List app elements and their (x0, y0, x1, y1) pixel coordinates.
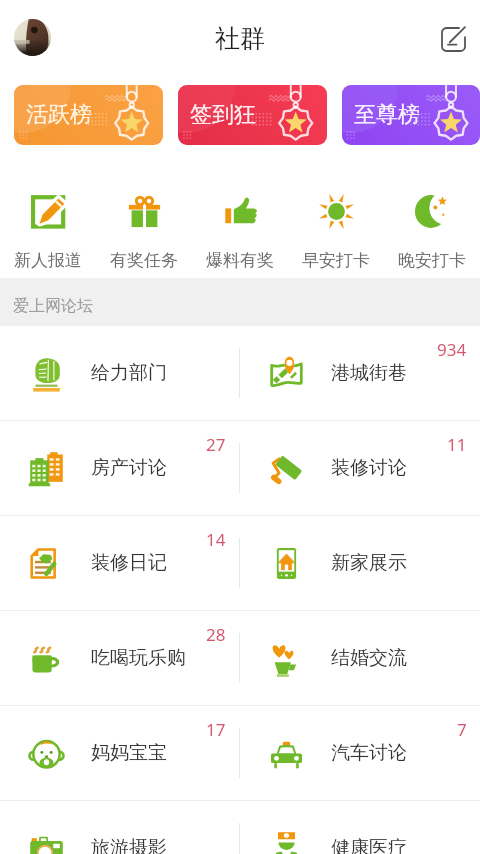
staticText: 汽车讨论 (331, 741, 407, 765)
staticText: 签到狂 (190, 101, 256, 129)
staticText: 新家展示 (331, 551, 407, 575)
button[interactable]: 吃喝玩乐购 (0, 611, 239, 705)
staticText: 11 (447, 433, 467, 456)
staticText: 社群 (215, 23, 265, 54)
button[interactable]: 装修日记 (0, 516, 239, 610)
button[interactable]: 签到狂 (178, 85, 327, 145)
button[interactable]: 房产讨论 (0, 421, 239, 515)
staticText: 早安打卡 (302, 250, 370, 271)
staticText: 吃喝玩乐购 (91, 646, 186, 670)
staticText: 爱上网论坛 (13, 296, 93, 316)
button[interactable]: 晚安打卡 (384, 145, 480, 278)
button[interactable]: Profile (14, 19, 51, 56)
button[interactable]: 结婚交流 (240, 611, 480, 705)
staticText: 装修日记 (91, 551, 167, 575)
button[interactable]: 活跃榜 (14, 85, 163, 145)
staticText: 有奖任务 (110, 250, 178, 271)
staticText: 爆料有奖 (206, 250, 274, 271)
staticText: 28 (206, 623, 226, 646)
button[interactable]: 健康医疗 (240, 801, 480, 854)
button[interactable]: 有奖任务 (96, 145, 192, 278)
staticText: 装修讨论 (331, 456, 407, 480)
staticText: 港城街巷 (331, 361, 407, 385)
staticText: 17 (206, 718, 226, 741)
button[interactable]: New post (431, 17, 475, 61)
staticText: 934 (437, 338, 467, 361)
staticText: 14 (206, 528, 226, 551)
button[interactable]: 汽车讨论 (240, 706, 480, 800)
staticText: 活跃榜 (26, 101, 92, 129)
button[interactable]: 新人报道 (0, 145, 96, 278)
staticText: 7 (457, 718, 467, 741)
button[interactable]: 港城街巷 (240, 326, 480, 420)
staticText: 结婚交流 (331, 646, 407, 670)
button[interactable]: 早安打卡 (288, 145, 384, 278)
staticText: 旅游摄影 (91, 836, 167, 854)
button[interactable]: 新家展示 (240, 516, 480, 610)
button[interactable]: 给力部门 (0, 326, 239, 420)
staticText: 新人报道 (14, 250, 82, 271)
button[interactable]: 装修讨论 (240, 421, 480, 515)
staticText: 晚安打卡 (398, 250, 466, 271)
staticText: 健康医疗 (331, 836, 407, 854)
staticText: 妈妈宝宝 (91, 741, 167, 765)
staticText: 至尊榜 (354, 101, 420, 129)
button[interactable]: 爆料有奖 (192, 145, 288, 278)
staticText: 给力部门 (91, 361, 167, 385)
button[interactable]: 至尊榜 (342, 85, 480, 145)
staticText: 房产讨论 (91, 456, 167, 480)
staticText: 27 (206, 433, 226, 456)
button[interactable]: 妈妈宝宝 (0, 706, 239, 800)
button[interactable]: 旅游摄影 (0, 801, 239, 854)
